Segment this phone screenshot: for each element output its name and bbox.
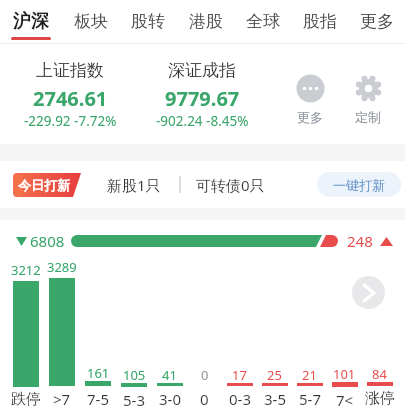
button[interactable]: 板块 (74, 0, 108, 43)
button[interactable]: 25 (257, 258, 292, 409)
button[interactable]: 沪深 (11, 0, 51, 43)
staticText: 今日打新 (18, 177, 70, 193)
staticText: 跌停 (11, 390, 41, 409)
staticText: 板块 (74, 11, 108, 32)
staticText: 3289 (47, 258, 77, 276)
staticText: 84 (372, 365, 387, 383)
staticText: 41 (162, 366, 177, 384)
button[interactable]: 3289 (44, 258, 80, 409)
staticText: 0 (201, 366, 209, 384)
button[interactable]: 更多 (360, 0, 394, 43)
button[interactable]: 161 (80, 258, 116, 409)
staticText: 定制 (355, 109, 381, 125)
staticText: -229.92 -7.72% (24, 112, 117, 130)
button[interactable]: 21 (292, 258, 327, 409)
staticText: 105 (123, 366, 146, 384)
button[interactable]: 41 (152, 258, 187, 409)
button[interactable]: 105 (116, 258, 152, 410)
staticText: 3212 (11, 261, 41, 279)
button[interactable]: 一键打新 (317, 172, 401, 197)
staticText: 深证成指 (168, 60, 236, 81)
staticText: 7-5 (87, 389, 109, 409)
staticText: 17 (232, 366, 247, 384)
button[interactable] (352, 276, 385, 309)
staticText: 股转 (131, 11, 165, 32)
button[interactable]: 101 (327, 258, 362, 410)
staticText: 更多 (297, 109, 323, 125)
button[interactable]: 更多 (291, 74, 329, 125)
button[interactable]: 股指 (303, 0, 337, 43)
staticText: 9779.67 (165, 85, 240, 112)
staticText: 上证指数 (36, 60, 104, 81)
staticText: 港股 (189, 11, 223, 32)
staticText: 5-3 (123, 390, 145, 410)
staticText: 161 (87, 364, 110, 382)
staticText: 25 (267, 366, 282, 384)
staticText: 248 (347, 231, 373, 251)
button[interactable]: 0 (187, 258, 222, 409)
button[interactable]: 84 (362, 258, 397, 408)
staticText: 6808 (30, 231, 65, 251)
button[interactable]: 今日打新 (0, 161, 405, 208)
button[interactable]: 上证指数 (14, 60, 126, 130)
staticText: 全球 (246, 11, 280, 32)
button[interactable]: 3212 (8, 258, 44, 409)
staticText: 股指 (303, 11, 337, 32)
staticText: 0-3 (229, 389, 251, 409)
button[interactable]: 股转 (131, 0, 165, 43)
staticText: 沪深 (13, 10, 49, 33)
staticText: 涨停 (365, 389, 395, 408)
staticText: 0 (200, 389, 209, 409)
staticText: 3-5 (264, 389, 286, 409)
button[interactable]: 港股 (189, 0, 223, 43)
button[interactable]: 全球 (246, 0, 280, 43)
staticText: -902.24 -8.45% (156, 112, 249, 130)
staticText: 新股1只 (107, 175, 161, 195)
staticText: 2746.61 (33, 85, 108, 112)
staticText: >7 (53, 389, 71, 409)
staticText: 一键打新 (333, 177, 385, 193)
staticText: 101 (333, 365, 356, 383)
button[interactable]: 17 (222, 258, 257, 409)
button[interactable]: 深证成指 (146, 60, 258, 130)
staticText: 5-7 (299, 389, 321, 409)
staticText: 可转债0只 (196, 175, 265, 195)
staticText: 更多 (360, 11, 394, 32)
staticText: 21 (302, 366, 317, 384)
staticText: 7< (336, 390, 354, 410)
button[interactable]: 定制 (349, 74, 387, 125)
staticText: 3-0 (159, 389, 181, 409)
